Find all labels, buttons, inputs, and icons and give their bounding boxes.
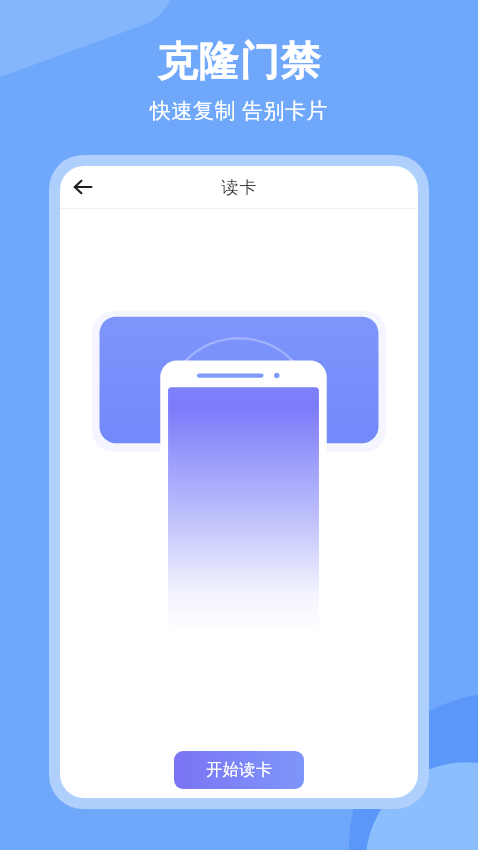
button[interactable]: Back xyxy=(64,168,102,206)
staticText: 快速复制 告别卡片 xyxy=(150,96,328,125)
staticText: 克隆门禁 xyxy=(157,36,321,86)
button[interactable]: 开始读卡 xyxy=(174,751,304,789)
staticText: 读卡 xyxy=(221,177,257,198)
staticText: 开始读卡 xyxy=(206,760,272,780)
